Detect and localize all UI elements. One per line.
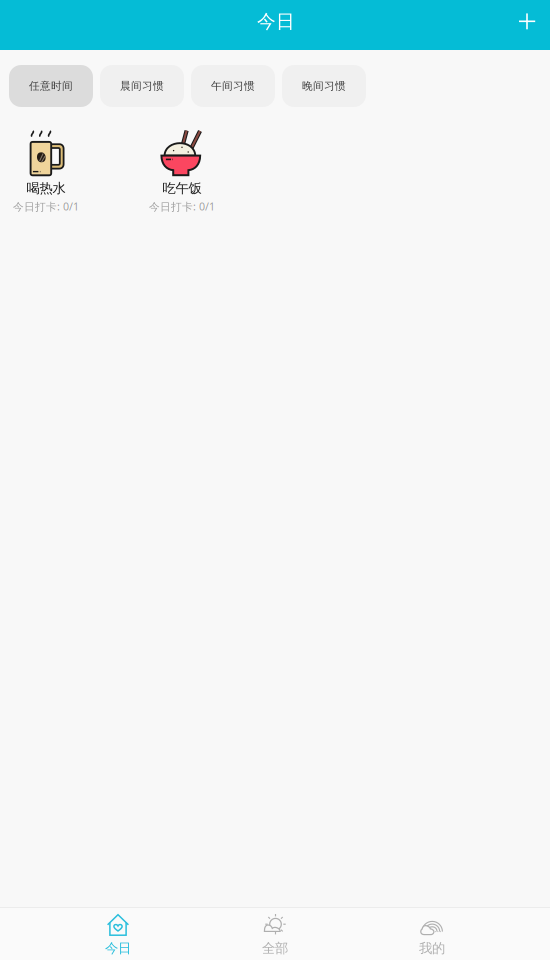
button[interactable]: 添加习惯 <box>502 0 548 50</box>
staticText: 我的 <box>419 940 445 956</box>
button[interactable]: 任意时间 <box>9 65 93 107</box>
staticText: 吃午饭 <box>162 180 201 196</box>
staticText: 喝热水 <box>26 180 65 196</box>
button[interactable]: 吃午饭 <box>136 130 228 213</box>
staticText: 午间习惯 <box>211 79 255 92</box>
button[interactable]: 晨间习惯 <box>100 65 184 107</box>
button[interactable]: 午间习惯 <box>191 65 275 107</box>
staticText: 晨间习惯 <box>120 79 164 92</box>
staticText: 今日打卡: 0/1 <box>149 199 215 214</box>
staticText: 全部 <box>262 940 288 956</box>
button[interactable]: 今日 <box>39 908 196 960</box>
staticText: 任意时间 <box>29 79 73 92</box>
button[interactable]: 晚间习惯 <box>282 65 366 107</box>
button[interactable]: 喝热水 <box>0 130 92 213</box>
staticText: 今日 <box>257 10 295 33</box>
staticText: 今日打卡: 0/1 <box>13 199 79 214</box>
button[interactable]: 全部 <box>196 908 353 960</box>
button[interactable]: 我的 <box>353 908 510 960</box>
staticText: 晚间习惯 <box>302 79 346 92</box>
staticText: 今日 <box>105 940 131 956</box>
